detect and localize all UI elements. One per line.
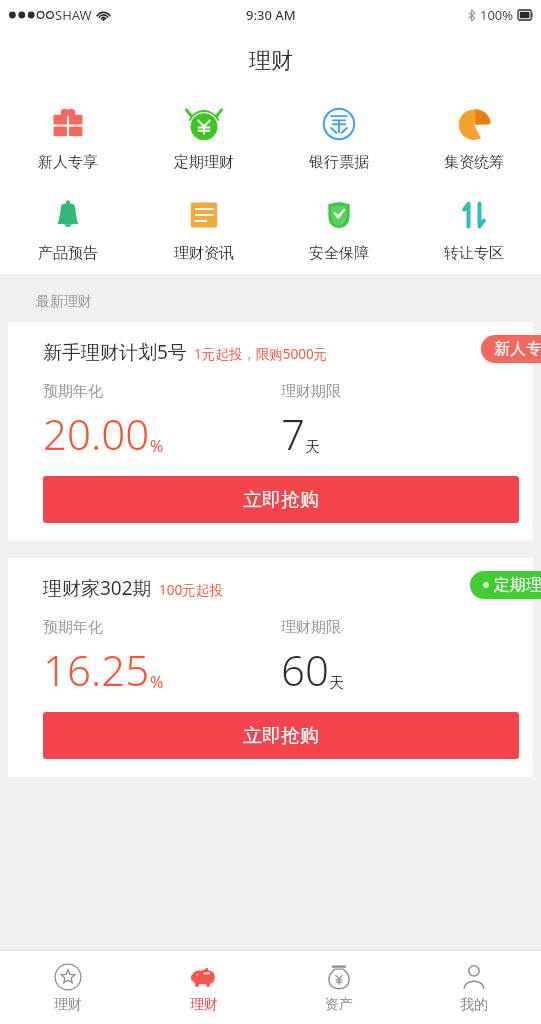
staticText: 60 [281, 641, 329, 698]
staticText: 资产 [325, 996, 353, 1014]
staticText: 天 [329, 674, 344, 693]
staticText: 新人专享 [38, 153, 98, 172]
button[interactable]: 理财资讯 [136, 183, 271, 274]
staticText: 新人专享 [494, 339, 541, 359]
staticText: % [150, 671, 164, 693]
staticText: 理财 [190, 996, 218, 1014]
staticText: 银行票据 [309, 153, 369, 172]
staticText: 预期年化 [43, 618, 103, 637]
button[interactable]: 新人专享 [481, 335, 541, 363]
button[interactable]: 定期理财 [136, 92, 271, 183]
staticText: 100% [480, 6, 514, 24]
button[interactable]: 新人专享 [0, 92, 136, 183]
button[interactable]: 立即抢购 [43, 476, 519, 523]
staticText: 理财 [54, 996, 82, 1014]
staticText: 集资统筹 [444, 153, 504, 172]
staticText: 理财家302期 [43, 575, 152, 601]
staticText: 立即抢购 [243, 488, 319, 512]
staticText: 我的 [460, 996, 488, 1014]
button[interactable]: Wealth [136, 951, 271, 1024]
staticText: 20.00 [43, 405, 150, 462]
staticText: 安全保障 [309, 244, 369, 263]
staticText: SHAW [55, 6, 92, 24]
staticText: 定期理财 [174, 153, 234, 172]
button[interactable]: Favorites [0, 951, 136, 1024]
staticText: 定期理财 [494, 575, 541, 595]
button[interactable]: 集资统筹 [406, 92, 541, 183]
button[interactable]: 产品预告 [0, 183, 136, 274]
button[interactable]: 安全保障 [271, 183, 406, 274]
staticText: 1元起投，限购5000元 [194, 345, 328, 363]
staticText: 新手理财计划5号 [43, 339, 187, 365]
staticText: 理财期限 [281, 618, 341, 637]
staticText: 理财 [249, 47, 293, 75]
button[interactable]: 定期理财 [470, 571, 541, 599]
staticText: 理财资讯 [174, 244, 234, 263]
staticText: 7 [281, 405, 305, 462]
staticText: 理财期限 [281, 382, 341, 401]
staticText: 天 [305, 438, 320, 457]
button[interactable]: 银行票据 [271, 92, 406, 183]
staticText: 立即抢购 [243, 724, 319, 748]
button[interactable]: 理财家302期 [8, 558, 533, 777]
staticText: 16.25 [43, 641, 150, 698]
button[interactable]: 立即抢购 [43, 712, 519, 759]
button[interactable]: Profile [406, 951, 541, 1024]
staticText: 9:30 AM [246, 6, 296, 24]
button[interactable]: 转让专区 [406, 183, 541, 274]
staticText: 转让专区 [444, 244, 504, 263]
staticText: % [150, 435, 164, 457]
staticText: 最新理财 [36, 293, 92, 311]
staticText: 100元起投 [159, 581, 223, 599]
staticText: 预期年化 [43, 382, 103, 401]
button[interactable]: Assets [271, 951, 406, 1024]
button[interactable]: 新手理财计划5号 [8, 322, 533, 541]
staticText: 产品预告 [38, 244, 98, 263]
